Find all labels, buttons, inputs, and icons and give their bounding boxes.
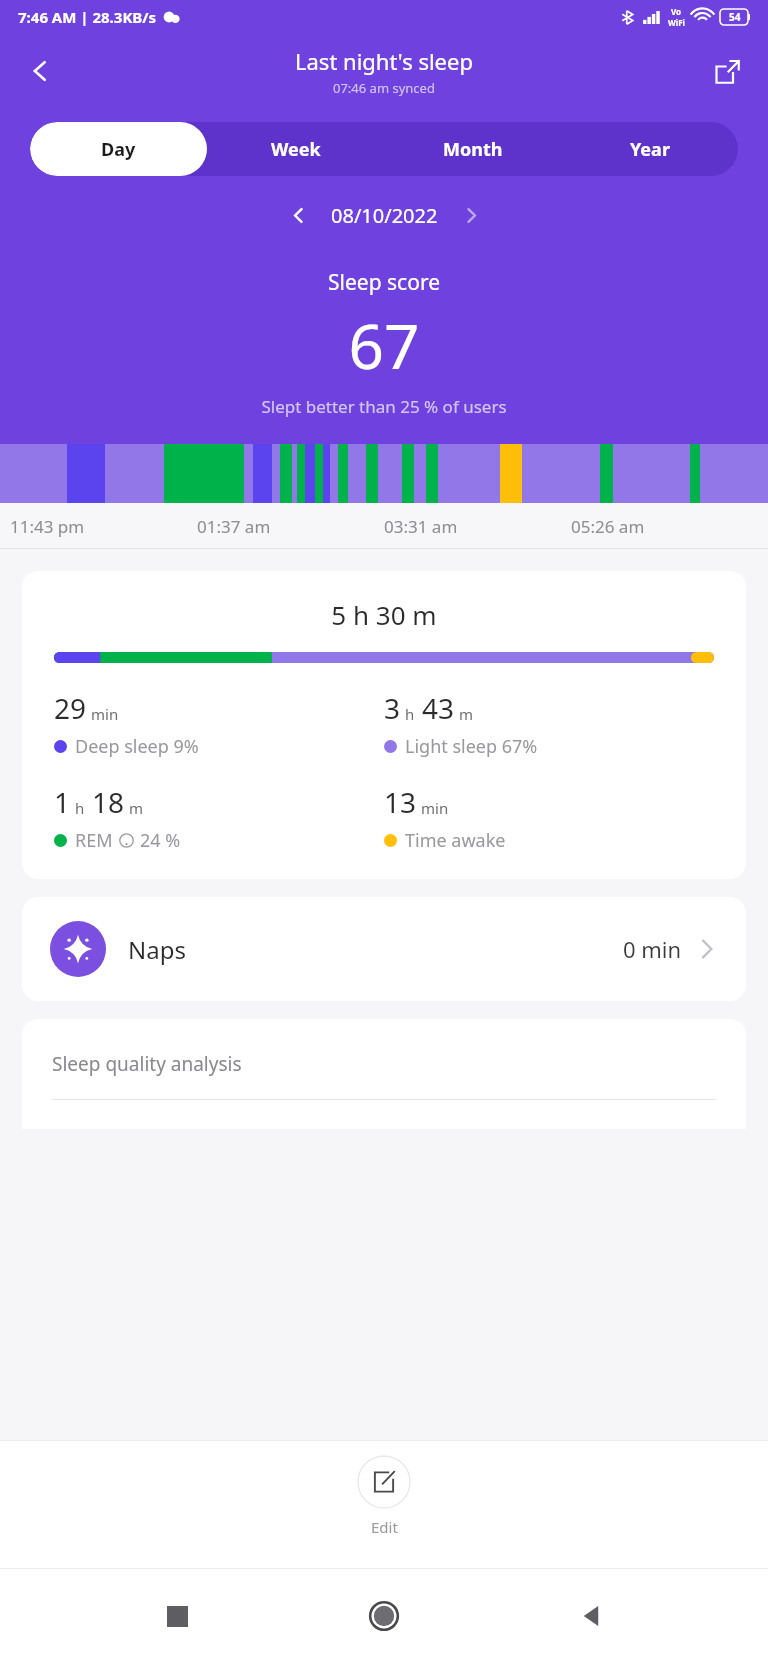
button[interactable]: Recents	[147, 1586, 207, 1646]
staticText: Naps	[128, 933, 186, 966]
button[interactable]: Week	[207, 122, 384, 176]
staticText: Week	[271, 137, 321, 162]
staticText: REM	[75, 828, 113, 853]
staticText: Deep sleep 9%	[75, 734, 199, 759]
staticText: 54	[729, 10, 741, 24]
button[interactable]: 5 h 30 m	[22, 571, 746, 879]
staticText: Year	[630, 137, 670, 162]
staticText: Last night's sleep	[295, 46, 473, 76]
button[interactable]: Next day	[450, 194, 492, 236]
staticText: 05:26 am	[571, 515, 645, 538]
staticText: 07:46 am synced	[333, 79, 435, 97]
staticText: 29	[54, 689, 87, 727]
staticText: 18	[92, 783, 125, 821]
staticText: 11:43 pm	[10, 515, 85, 538]
button[interactable]: Naps	[22, 897, 746, 1001]
staticText: 24 %	[140, 828, 181, 853]
staticText: m	[129, 798, 144, 818]
staticText: min	[91, 704, 119, 724]
staticText: 5 h 30 m	[54, 597, 714, 632]
staticText: 67	[0, 303, 768, 387]
staticText: 03:31 am	[384, 515, 458, 538]
staticText: Light sleep 67%	[405, 734, 538, 759]
button[interactable]: Share	[700, 44, 754, 98]
staticText: Day	[101, 137, 136, 162]
staticText: WiFi	[668, 17, 685, 28]
staticText: Time awake	[405, 828, 506, 853]
staticText: Month	[443, 137, 503, 162]
button[interactable]: Back	[12, 43, 68, 99]
staticText: 7:46 AM | 28.3KB/s	[18, 7, 157, 27]
staticText: 08/10/2022	[331, 202, 438, 229]
staticText: h	[75, 798, 85, 818]
staticText: Sleep score	[0, 268, 768, 297]
button[interactable]: Edit	[339, 1455, 429, 1537]
staticText: Sleep quality analysis	[52, 1051, 242, 1077]
staticText: 1	[54, 783, 71, 821]
staticText: min	[421, 798, 449, 818]
button[interactable]: Back	[561, 1586, 621, 1646]
staticText: 43	[422, 689, 455, 727]
staticText: m	[459, 704, 474, 724]
staticText: 13	[384, 783, 417, 821]
button[interactable]: Day	[30, 122, 207, 176]
button[interactable]: Sleep quality analysis	[22, 1019, 746, 1129]
staticText: 3	[384, 689, 401, 727]
staticText: 0 min	[623, 934, 682, 964]
staticText: Slept better than 25 % of users	[0, 395, 768, 418]
staticText: Edit	[371, 1517, 398, 1537]
staticText: 01:37 am	[197, 515, 271, 538]
button[interactable]: Year	[561, 122, 738, 176]
button[interactable]: Month	[384, 122, 561, 176]
staticText: Vo	[671, 6, 682, 17]
button[interactable]: Previous day	[277, 194, 319, 236]
button[interactable]: Home	[354, 1586, 414, 1646]
staticText: h	[405, 704, 415, 724]
